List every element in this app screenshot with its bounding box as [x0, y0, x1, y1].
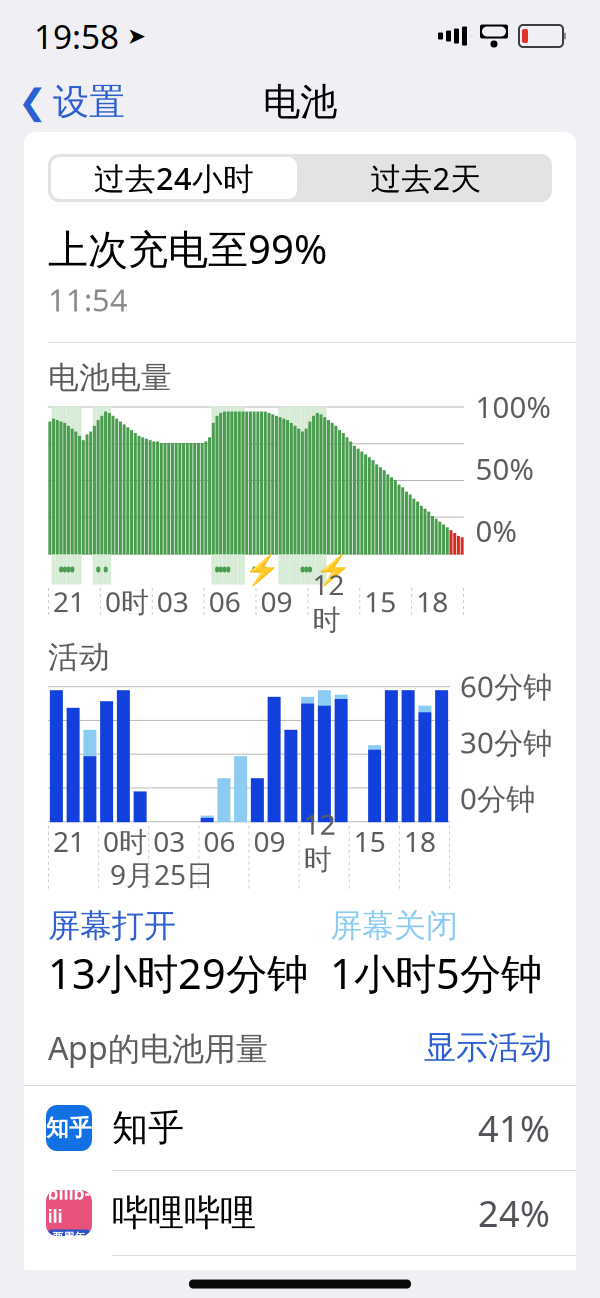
- staticText: ❮: [18, 82, 47, 122]
- staticText: 18: [416, 583, 448, 620]
- staticText: QQ: [112, 1258, 168, 1298]
- staticText: ⚡: [244, 553, 281, 586]
- staticText: ⚡: [315, 553, 352, 586]
- button[interactable]: 过去24小时: [48, 154, 300, 202]
- staticText: 0时: [105, 583, 149, 620]
- button[interactable]: bilibili: [24, 1171, 576, 1255]
- staticText: 两周年: [52, 1230, 85, 1244]
- staticText: 03: [153, 823, 185, 860]
- button[interactable]: QQ: [24, 1256, 576, 1298]
- staticText: 屏幕打开: [48, 906, 176, 945]
- staticText: 电池电量: [48, 359, 172, 396]
- staticText: 09: [260, 583, 292, 620]
- staticText: 1小时5分钟: [330, 945, 542, 1000]
- staticText: 24%: [478, 1189, 550, 1237]
- staticText: App的电池用量: [48, 1026, 268, 1069]
- staticText: 100%: [475, 387, 550, 426]
- staticText: 上次充电至99%: [48, 222, 327, 275]
- button[interactable]: 知乎: [24, 1086, 576, 1170]
- staticText: bilibili: [47, 1181, 90, 1227]
- staticText: 设置: [53, 80, 125, 124]
- staticText: 0%: [475, 511, 516, 550]
- staticText: 60分钟: [460, 667, 552, 706]
- staticText: 显示活动: [424, 1028, 552, 1067]
- staticText: 哔哩哔哩: [112, 1191, 256, 1235]
- staticText: 09: [253, 823, 285, 860]
- staticText: 过去2天: [370, 158, 481, 198]
- staticText: 12时: [312, 566, 344, 637]
- staticText: 21: [53, 583, 85, 620]
- staticText: 屏幕关闭: [330, 906, 458, 945]
- staticText: ➤: [119, 23, 146, 49]
- staticText: 活动: [48, 638, 110, 676]
- staticText: 12时: [304, 805, 336, 877]
- staticText: 15: [354, 823, 386, 860]
- staticText: 41%: [478, 1104, 550, 1152]
- staticText: 知乎: [112, 1106, 184, 1150]
- staticText: 0时: [103, 823, 147, 860]
- staticText: 06: [203, 823, 235, 860]
- staticText: 知乎: [46, 1114, 92, 1142]
- staticText: 03: [157, 583, 189, 620]
- staticText: 0分钟: [460, 779, 535, 818]
- staticText: 18: [404, 823, 436, 860]
- staticText: 9月25日: [110, 856, 214, 893]
- staticText: 50%: [475, 449, 533, 488]
- staticText: 06: [209, 583, 241, 620]
- staticText: 过去24小时: [94, 158, 254, 198]
- staticText: 电池: [263, 79, 337, 125]
- staticText: 19:58: [34, 14, 119, 58]
- staticText: 15: [364, 583, 396, 620]
- button[interactable]: 显示活动: [424, 1028, 552, 1067]
- staticText: 21: [53, 823, 85, 860]
- button[interactable]: ❮: [0, 74, 143, 130]
- staticText: 30分钟: [460, 723, 552, 762]
- staticText: 13小时29分钟: [48, 945, 308, 1000]
- button[interactable]: 过去2天: [300, 154, 552, 202]
- staticText: 11:54: [48, 279, 128, 320]
